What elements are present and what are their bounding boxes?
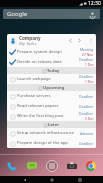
staticText: 1 Dec <box>85 62 94 67</box>
staticText: Upcoming <box>43 85 65 91</box>
staticText: Deadline <box>79 141 94 146</box>
other: Voice search <box>89 11 96 18</box>
staticText: Later <box>48 122 60 128</box>
button[interactable]: Prepare system design <box>7 47 96 57</box>
button[interactable]: Prepare design of the app <box>7 138 96 148</box>
staticText: Prepare system design <box>17 49 79 55</box>
staticText: Google <box>7 10 28 18</box>
staticText: Setup network infrastructure <box>17 130 79 136</box>
staticText: Prepare design of the app <box>17 140 78 146</box>
button[interactable]: Next <box>76 37 83 44</box>
staticText: Meeting <box>80 47 94 52</box>
button[interactable]: Phone <box>6 159 19 172</box>
staticText: 1 Dec <box>85 79 94 84</box>
button[interactable]: Camera <box>65 159 78 172</box>
button[interactable]: Today <box>7 67 96 74</box>
staticText: Purchase servers <box>17 93 78 99</box>
button[interactable]: Later <box>7 121 96 128</box>
staticText: Advance <box>80 131 94 136</box>
staticText: Write the first blog post <box>17 113 78 119</box>
button[interactable]: Write the first blog post <box>7 111 96 121</box>
staticText: Deadline <box>79 57 94 62</box>
button[interactable]: More options <box>88 38 94 44</box>
staticText: 12:30 <box>88 0 101 7</box>
staticText: Launch webpage <box>17 76 78 82</box>
button[interactable]: Apps <box>44 158 59 173</box>
button[interactable]: Upcoming <box>7 84 96 91</box>
staticText: 5 Dec <box>85 116 94 121</box>
button[interactable]: Launch webpage <box>7 74 96 84</box>
button[interactable]: Home <box>48 176 55 183</box>
button[interactable]: Recents <box>76 176 83 183</box>
staticText: Deadline <box>79 111 94 116</box>
button[interactable]: Read relevant papers <box>7 101 96 111</box>
staticText: Deadline <box>79 74 94 79</box>
button[interactable]: Chrome <box>84 159 97 172</box>
staticText: My Tasks <box>19 41 37 47</box>
button[interactable]: Purchase servers <box>7 91 96 101</box>
staticText: 27 Nov <box>82 52 94 57</box>
button[interactable]: Previous <box>67 37 74 44</box>
staticText: Decide on release date <box>17 59 78 65</box>
button[interactable]: Messaging <box>25 159 38 172</box>
staticText: Read relevant papers <box>17 103 78 109</box>
button[interactable]: Setup network infrastructure <box>7 128 96 138</box>
staticText: Deadline <box>79 104 94 109</box>
button[interactable]: Company <box>7 34 96 47</box>
button[interactable]: Google <box>3 9 100 19</box>
staticText: Company <box>19 35 41 41</box>
button[interactable]: Decide on release date <box>7 57 96 67</box>
staticText: Deadline <box>79 94 94 99</box>
button[interactable]: Back <box>21 176 28 183</box>
staticText: Today <box>47 68 60 74</box>
